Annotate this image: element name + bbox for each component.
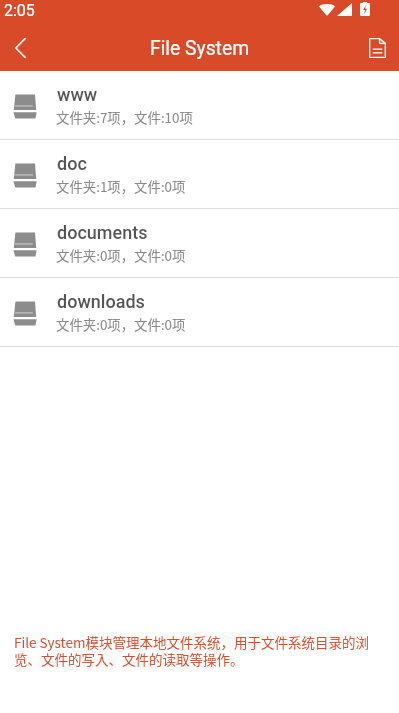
button[interactable]: Back — [0, 24, 40, 71]
staticText: 文件夹:0项，文件:0项 — [56, 314, 186, 333]
staticText: File System模块管理本地文件系统，用于文件系统目录的浏览、文件的写入、… — [14, 632, 387, 669]
staticText: File System — [150, 37, 250, 60]
staticText: doc — [57, 153, 87, 174]
button[interactable]: New file — [355, 24, 399, 71]
button[interactable]: doc — [0, 140, 399, 209]
staticText: 文件夹:7项，文件:10项 — [56, 107, 193, 126]
button[interactable]: downloads — [0, 278, 399, 347]
staticText: 文件夹:0项，文件:0项 — [56, 245, 186, 264]
staticText: 2:05 — [4, 1, 35, 20]
staticText: www — [57, 84, 98, 105]
staticText: downloads — [57, 291, 145, 312]
button[interactable]: www — [0, 71, 399, 140]
button[interactable]: documents — [0, 209, 399, 278]
staticText: documents — [57, 222, 148, 243]
staticText: 文件夹:1项，文件:0项 — [56, 176, 186, 195]
